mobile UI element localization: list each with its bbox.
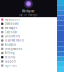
staticText: Integrations bbox=[5, 47, 22, 51]
staticText: Team Members bbox=[5, 39, 24, 42]
button[interactable]: My Account bbox=[0, 17, 57, 22]
button[interactable]: Analytics bbox=[0, 43, 57, 47]
staticText: Documents bbox=[5, 34, 20, 38]
button[interactable]: Messages bbox=[0, 26, 57, 30]
button[interactable]: Integrations bbox=[0, 47, 57, 51]
staticText: Security bbox=[5, 55, 15, 59]
staticText: Workspace bbox=[22, 9, 35, 13]
staticText: My Account bbox=[5, 18, 20, 21]
button[interactable]: Team Members bbox=[0, 38, 57, 43]
button[interactable]: Documents bbox=[0, 34, 57, 38]
staticText: Dashboard bbox=[5, 22, 19, 25]
button[interactable]: Sign Out bbox=[0, 63, 57, 68]
staticText: Support bbox=[5, 60, 16, 63]
staticText: Calendar bbox=[5, 30, 17, 34]
staticText: Billing bbox=[5, 51, 15, 55]
button[interactable]: Support bbox=[0, 59, 57, 63]
button[interactable]: Calendar bbox=[0, 30, 57, 34]
staticText: tap to manage bbox=[19, 13, 38, 16]
button[interactable]: Billing bbox=[0, 51, 57, 55]
staticText: Analytics bbox=[5, 43, 16, 46]
staticText: Sign Out bbox=[5, 64, 17, 67]
staticText: Messages bbox=[5, 26, 17, 30]
button[interactable]: Security bbox=[0, 55, 57, 59]
button[interactable]: Dashboard bbox=[0, 22, 57, 26]
